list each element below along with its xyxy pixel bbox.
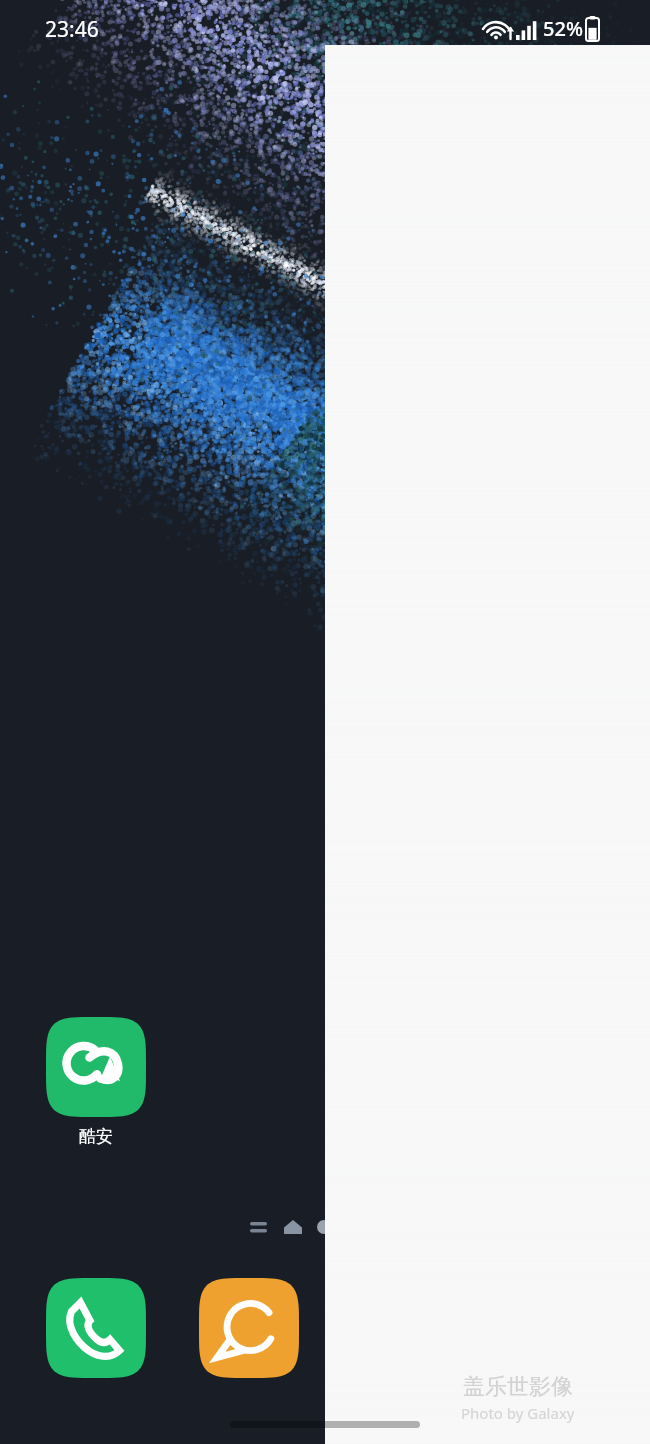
staticText: 盖乐世影像: [463, 1373, 573, 1401]
staticText: 23:46: [45, 15, 99, 44]
staticText: 52%: [543, 15, 583, 42]
button[interactable]: [46, 1017, 146, 1117]
staticText: 酷安: [46, 1126, 146, 1147]
staticText: Photo by Galaxy: [461, 1403, 575, 1423]
button[interactable]: Phone: [46, 1278, 146, 1378]
button[interactable]: Messages: [199, 1278, 299, 1378]
